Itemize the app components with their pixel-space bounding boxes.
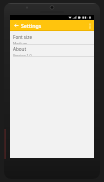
staticText: About <box>13 46 27 52</box>
staticText: Font size <box>13 34 32 40</box>
staticText: Medium <box>13 41 28 44</box>
button[interactable]: About <box>10 45 94 56</box>
button[interactable]: Font size <box>10 33 94 44</box>
staticText: Version 1.0 <box>13 53 32 56</box>
button[interactable]: More options <box>86 20 94 31</box>
staticText: Settings <box>21 22 42 29</box>
button[interactable]: Navigate up <box>12 20 20 31</box>
